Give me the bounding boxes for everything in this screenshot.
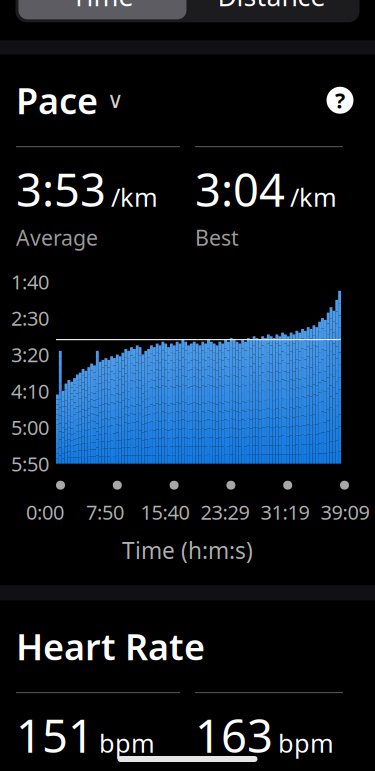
staticText: Best: [195, 223, 239, 252]
button[interactable]: Pace: [16, 76, 124, 124]
staticText: ?: [335, 86, 345, 114]
staticText: 0:00: [26, 499, 64, 525]
staticText: Time: [71, 0, 133, 13]
staticText: 163: [195, 705, 273, 765]
staticText: bpm: [99, 726, 155, 760]
staticText: bpm: [278, 726, 334, 760]
button[interactable]: Time: [18, 0, 186, 19]
staticText: Pace: [16, 76, 98, 124]
staticText: Distance: [217, 0, 325, 13]
staticText: Heart Rate: [16, 622, 205, 670]
staticText: 7:50: [86, 499, 124, 525]
staticText: 39:09: [320, 499, 369, 525]
button[interactable]: Help: [321, 81, 359, 119]
staticText: 5:00: [11, 414, 49, 441]
staticText: 151: [16, 705, 94, 765]
staticText: Average: [16, 223, 98, 252]
staticText: 1:40: [11, 268, 49, 295]
staticText: Time (h:m:s): [122, 535, 253, 565]
staticText: 31:19: [260, 499, 309, 525]
staticText: 4:10: [11, 378, 49, 404]
staticText: 5:50: [11, 450, 49, 477]
staticText: 2:30: [11, 305, 49, 331]
staticText: 3:20: [11, 341, 49, 368]
staticText: 15:40: [140, 499, 189, 525]
button[interactable]: Distance: [187, 0, 355, 19]
staticText: 3:04: [195, 159, 285, 219]
staticText: ∨: [107, 87, 124, 113]
staticText: /km: [290, 180, 337, 214]
staticText: 3:53: [16, 159, 106, 219]
staticText: 23:29: [200, 499, 249, 525]
staticText: /km: [111, 180, 158, 214]
